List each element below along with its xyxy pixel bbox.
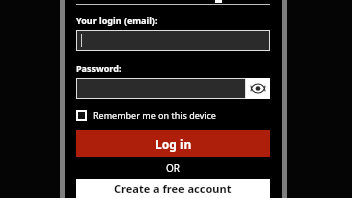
button[interactable] bbox=[76, 30, 270, 51]
staticText: Your login (email): bbox=[76, 14, 158, 26]
button[interactable]: Log in bbox=[76, 130, 270, 157]
staticText: Remember me on this device bbox=[93, 109, 216, 121]
button[interactable]: Create a free account bbox=[76, 179, 270, 198]
staticText: Log in bbox=[155, 136, 192, 152]
button[interactable] bbox=[76, 78, 246, 99]
button[interactable]: Show password bbox=[246, 78, 270, 99]
staticText: OR bbox=[76, 161, 270, 175]
staticText: Create a free account bbox=[114, 181, 232, 196]
button[interactable]: Remember me on this device bbox=[76, 109, 270, 121]
staticText: Password: bbox=[76, 62, 122, 74]
